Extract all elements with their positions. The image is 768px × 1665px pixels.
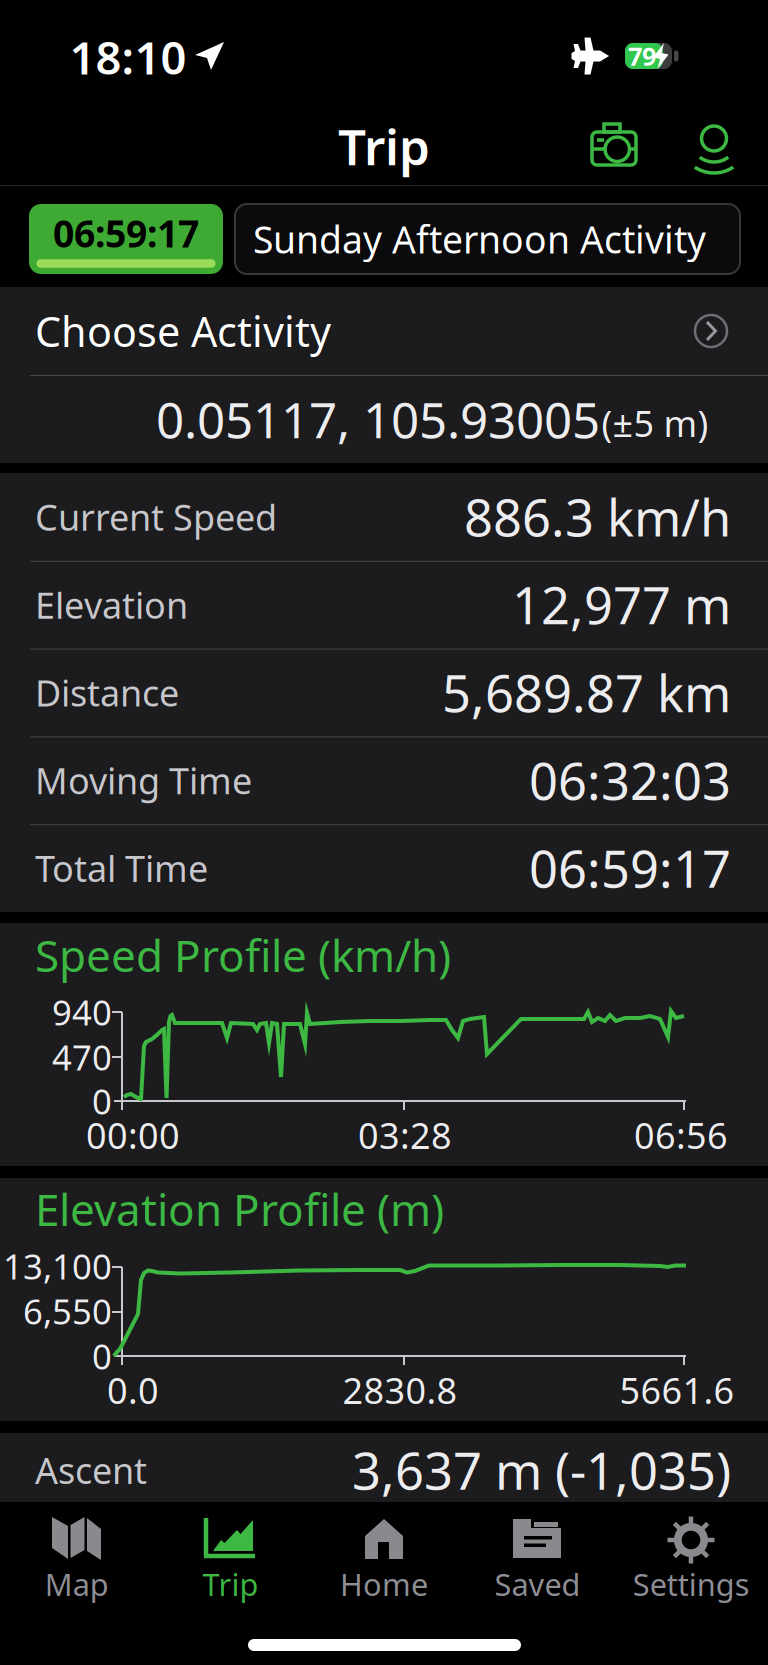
button[interactable]: Sunday Afternoon Activity	[235, 204, 740, 274]
staticText: 06:32:03	[529, 747, 731, 814]
staticText: 0	[92, 1333, 112, 1379]
staticText: 5661.6	[619, 1366, 734, 1414]
button[interactable]: Choose Activity	[0, 287, 768, 375]
staticText: 470	[52, 1034, 112, 1080]
button[interactable]: Camera	[0, 0, 768, 287]
staticText: Trip	[202, 1564, 258, 1604]
button[interactable]: Track location	[0, 0, 768, 287]
staticText: 6,550	[23, 1288, 112, 1334]
staticText: 5,689.87 km	[442, 659, 731, 726]
staticText: 03:28	[358, 1111, 452, 1159]
staticText: (±5 m)	[601, 399, 708, 447]
staticText: 3,637 m (-1,035)	[352, 1436, 731, 1504]
staticText: 13,100	[3, 1243, 112, 1289]
staticText: 886.3 km/h	[464, 483, 731, 551]
staticText: 18:10	[69, 27, 186, 87]
staticText: Sunday Afternoon Activity	[253, 214, 706, 264]
staticText: Home	[340, 1564, 428, 1604]
staticText: 06:59:17	[529, 834, 731, 902]
button[interactable]: Home	[307, 1502, 461, 1612]
staticText: Saved	[495, 1564, 581, 1604]
staticText: 79	[628, 39, 656, 73]
staticText: 0	[92, 1078, 112, 1124]
button[interactable]: Map	[0, 1502, 154, 1612]
staticText: Distance	[35, 669, 179, 716]
button[interactable]: 06:59:17	[29, 204, 223, 274]
staticText: Ascent	[35, 1446, 147, 1494]
staticText: Moving Time	[35, 756, 252, 804]
staticText: 12,977 m	[512, 571, 731, 638]
staticText: Map	[45, 1564, 109, 1604]
staticText: Speed Profile (km/h)	[35, 926, 451, 984]
staticText: 2830.8	[342, 1366, 457, 1414]
staticText: 0.05117, 105.93005	[156, 386, 600, 452]
staticText: 940	[52, 989, 112, 1035]
staticText: Current Speed	[35, 493, 277, 541]
staticText: 06:59:17	[53, 208, 199, 258]
button[interactable]: Trip	[154, 1502, 307, 1612]
staticText: 00:00	[86, 1111, 180, 1159]
staticText: Elevation Profile (m)	[35, 1180, 444, 1238]
button[interactable]: Settings	[614, 1502, 768, 1612]
button[interactable]: Saved	[461, 1502, 614, 1612]
staticText: 06:56	[634, 1111, 728, 1159]
staticText: Choose Activity	[35, 304, 331, 358]
staticText: Total Time	[35, 844, 208, 892]
staticText: 0.0	[107, 1366, 159, 1414]
staticText: Trip	[338, 113, 430, 179]
staticText: Settings	[633, 1564, 750, 1604]
staticText: Elevation	[35, 581, 188, 629]
